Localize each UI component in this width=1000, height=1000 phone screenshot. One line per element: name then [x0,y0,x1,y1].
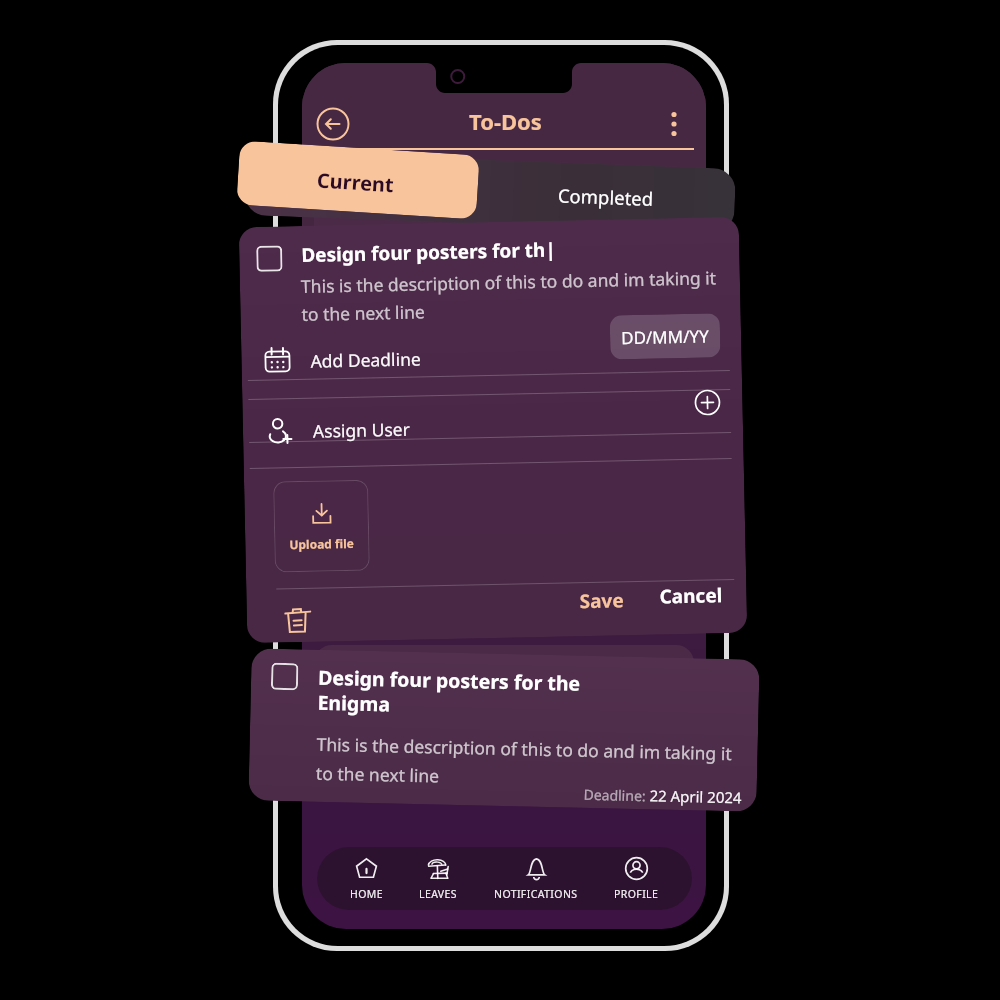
staticText: Add Deadline [310,346,422,373]
staticText: DD/MM/YY [621,324,709,349]
staticText: This is the description of this to do an… [301,265,718,326]
button[interactable]: DD/MM/YY [610,313,720,359]
staticText: LEAVES [419,887,457,901]
staticText: HOME [350,887,383,901]
staticText: NOTIFICATIONS [494,887,578,901]
button[interactable] [256,245,283,272]
staticText: Completed [557,182,654,211]
staticText: Design four posters for the Enigma [374,659,630,711]
staticText: Design four posters for the Enigma [374,329,630,381]
button[interactable]: Design four posters for the Enigma [248,648,760,812]
staticText: PROFILE [614,887,659,901]
button[interactable]: Completed [244,151,736,233]
staticText: Design four posters for the Enigma [374,164,630,216]
staticText: 22 April 2024 [649,785,743,807]
button[interactable]: Save [571,581,633,620]
staticText: Assign User [313,417,410,443]
button[interactable]: More options [660,110,688,138]
staticText: Cancel [659,582,723,609]
button[interactable]: Upload file [273,480,370,573]
button[interactable]: NOTIFICATIONS [490,853,582,905]
staticText: Design four posters for th| [301,237,556,268]
staticText: This is the description of this to do an… [374,727,694,778]
button[interactable]: HOME [346,853,387,905]
button[interactable]: Design four posters for the Enigma [314,480,694,629]
button[interactable]: Design four posters for the Enigma [314,150,694,299]
button[interactable]: Delete [285,607,311,635]
staticText: This is the description of this to do an… [374,397,694,448]
staticText: Current [316,166,395,198]
button[interactable]: Back [316,107,350,141]
staticText: Save [579,587,625,614]
button[interactable]: Design four posters for the Enigma [314,645,694,794]
button[interactable]: LEAVES [415,853,461,905]
staticText: Design four posters for the Enigma [317,664,581,722]
staticText: This is the description of this to do an… [374,562,694,613]
button[interactable]: Cancel [651,576,731,616]
button[interactable]: Current [236,140,480,219]
staticText: Deadline: [583,785,650,805]
staticText: Upload file [289,535,354,552]
button[interactable]: Add user [694,389,721,416]
staticText: This is the description of this to do an… [374,232,694,283]
staticText: To-Dos [469,106,542,136]
button[interactable]: PROFILE [610,853,663,905]
button[interactable]: Design four posters for the Enigma [314,315,694,464]
staticText: This is the description of this to do an… [316,732,733,794]
